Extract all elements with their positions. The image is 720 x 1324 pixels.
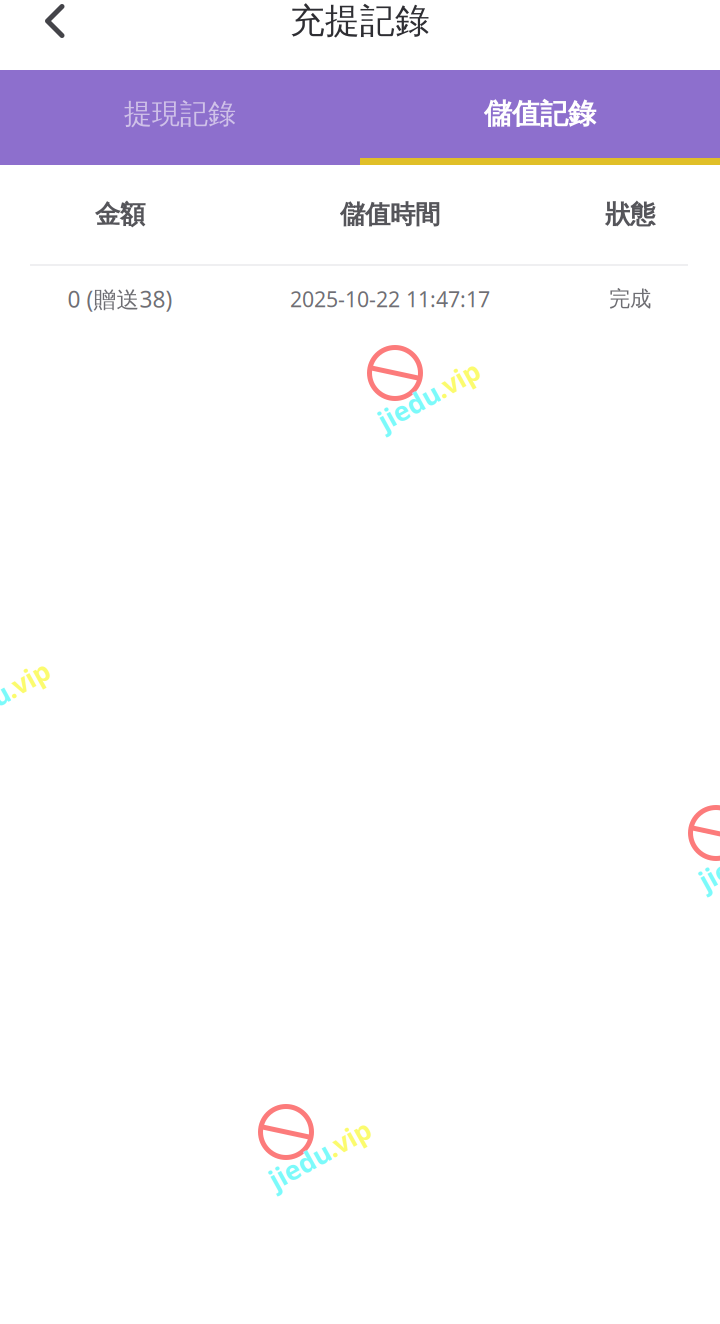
staticText: 2025-10-22 11:47:17 bbox=[290, 285, 490, 313]
button[interactable]: 提現記錄 bbox=[0, 70, 360, 158]
staticText: jiedu bbox=[263, 1136, 329, 1172]
button[interactable]: 儲值記錄 bbox=[360, 70, 720, 158]
staticText: jiedu bbox=[0, 677, 8, 713]
staticText: 儲值記錄 bbox=[484, 97, 596, 131]
staticText: .vip bbox=[329, 1136, 376, 1172]
staticText: 充提記錄 bbox=[290, 0, 430, 42]
staticText: jiedu bbox=[693, 837, 720, 873]
button[interactable]: Back bbox=[0, 0, 110, 42]
staticText: .vip bbox=[8, 677, 55, 713]
staticText: 完成 bbox=[609, 286, 651, 312]
staticText: jiedu bbox=[372, 377, 438, 413]
staticText: 提現記錄 bbox=[124, 97, 236, 131]
staticText: 儲值時間 bbox=[340, 199, 440, 230]
staticText: 金額 bbox=[95, 199, 145, 230]
staticText: 狀態 bbox=[605, 199, 655, 230]
staticText: 0 (贈送38) bbox=[67, 284, 172, 314]
staticText: .vip bbox=[438, 377, 485, 413]
